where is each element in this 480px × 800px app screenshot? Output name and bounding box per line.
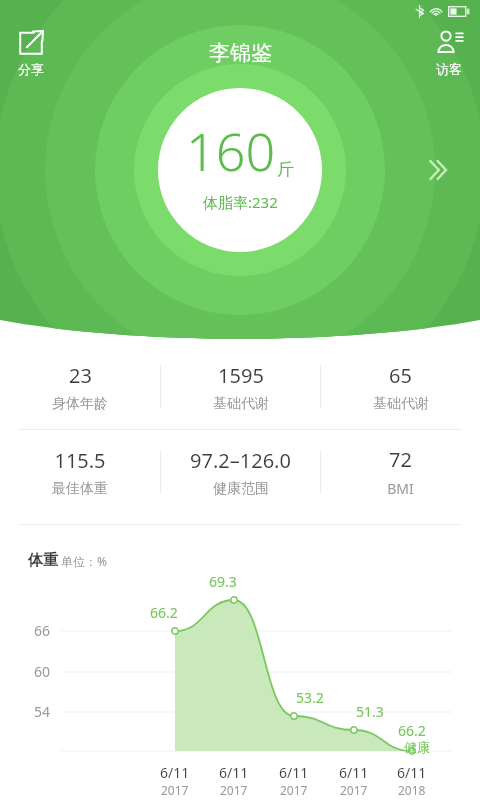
staticText: 66.2 — [398, 721, 426, 740]
button[interactable]: 115.5 — [0, 439, 160, 506]
staticText: 体重 — [28, 551, 58, 570]
staticText: 65 — [389, 362, 412, 389]
staticText: 1595 — [218, 362, 264, 389]
staticText: 6/11 — [397, 763, 427, 782]
staticText: 基础代谢 — [373, 395, 429, 413]
staticText: 基础代谢 — [213, 395, 269, 413]
staticText: BMI — [387, 479, 414, 498]
button[interactable]: 分享 — [12, 24, 50, 81]
staticText: 体脂率:232 — [203, 192, 278, 212]
staticText: 23 — [69, 362, 92, 389]
staticText: 李锦鉴 — [209, 40, 272, 66]
button[interactable]: Next — [418, 148, 462, 192]
staticText: 2017 — [220, 782, 248, 798]
button[interactable]: 72 — [321, 438, 480, 506]
button[interactable]: 1595 — [161, 354, 320, 421]
staticText: 2017 — [280, 782, 308, 798]
staticText: 115.5 — [54, 447, 106, 474]
staticText: 51.3 — [356, 702, 384, 721]
staticText: 6/11 — [160, 763, 190, 782]
button[interactable]: 65 — [321, 354, 480, 421]
staticText: 斤 — [277, 159, 294, 180]
button[interactable]: 97.2–126.0 — [161, 439, 320, 506]
staticText: 2018 — [398, 782, 426, 798]
staticText: 身体年龄 — [52, 395, 108, 413]
staticText: 2017 — [161, 782, 189, 798]
staticText: 最佳体重 — [52, 480, 108, 498]
staticText: 2017 — [340, 782, 368, 798]
staticText: 66 — [34, 621, 51, 640]
staticText: 分享 — [18, 61, 44, 77]
staticText: 健康 — [404, 739, 430, 755]
staticText: 160 — [186, 115, 276, 186]
staticText: 6/11 — [279, 763, 309, 782]
staticText: 60 — [34, 662, 51, 681]
staticText: 69.3 — [209, 572, 237, 591]
staticText: 66.2 — [150, 603, 178, 622]
staticText: 健康范围 — [213, 480, 269, 498]
staticText: 72 — [389, 446, 412, 473]
staticText: 6/11 — [219, 763, 249, 782]
button[interactable]: 访客 — [430, 24, 468, 81]
staticText: 53.2 — [296, 688, 324, 707]
staticText: 97.2–126.0 — [190, 447, 291, 474]
staticText: 6/11 — [339, 763, 369, 782]
staticText: 访客 — [436, 61, 462, 77]
button[interactable]: 23 — [0, 354, 160, 421]
staticText: 54 — [34, 702, 51, 721]
staticText: 单位：% — [61, 553, 107, 569]
